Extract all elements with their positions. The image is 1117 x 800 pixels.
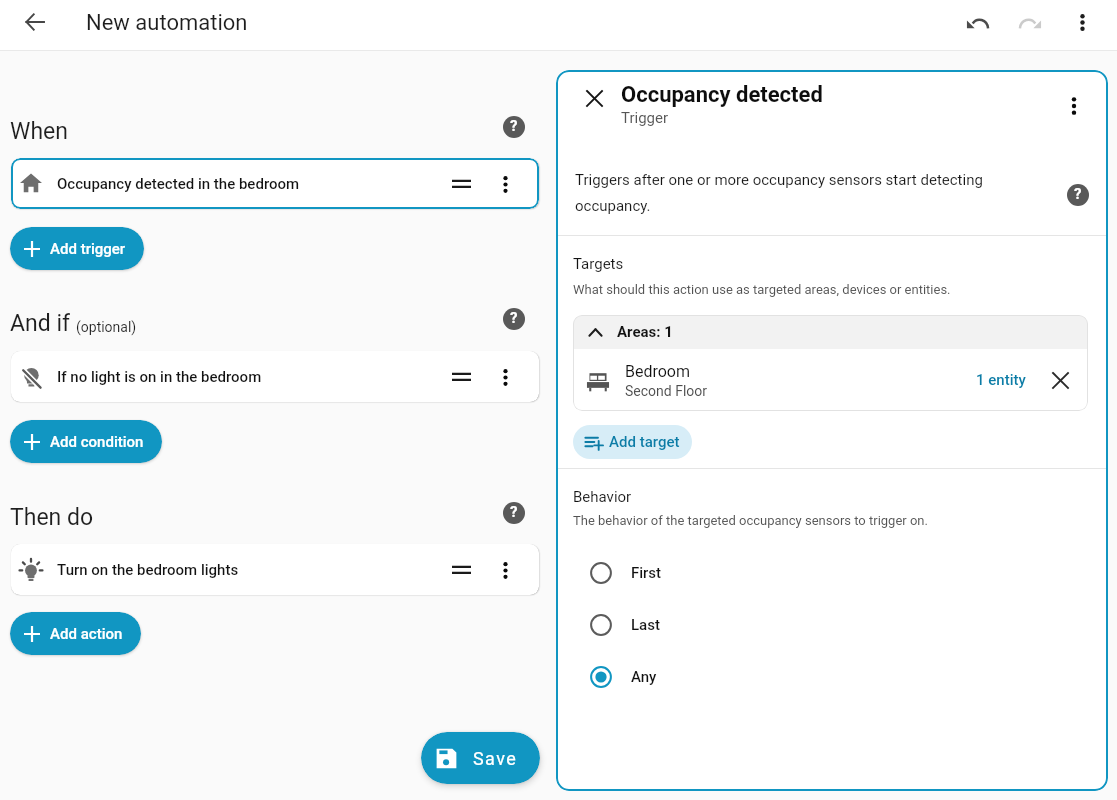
staticText: ? xyxy=(510,503,518,521)
staticText: When xyxy=(10,118,68,145)
button[interactable]: First xyxy=(573,547,1088,599)
button[interactable]: Last xyxy=(573,599,1088,651)
staticText: Trigger xyxy=(621,109,669,127)
button[interactable]: If no light is on in the bedroom xyxy=(11,351,539,402)
staticText: Areas: 1 xyxy=(617,323,673,341)
staticText: If no light is on in the bedroom xyxy=(57,368,262,386)
staticText: New automation xyxy=(86,10,248,36)
staticText: ? xyxy=(1074,185,1082,203)
button[interactable]: Add target xyxy=(573,425,692,459)
staticText: Occupancy detected in the bedroom xyxy=(57,175,300,193)
button[interactable]: Back xyxy=(13,4,57,48)
staticText: Any xyxy=(631,668,657,686)
button[interactable]: Help xyxy=(497,499,531,526)
staticText: (optional) xyxy=(76,319,137,335)
button[interactable]: Turn on the bedroom lights xyxy=(11,544,539,595)
button[interactable]: Save xyxy=(421,732,540,784)
staticText: Targets xyxy=(573,255,624,273)
staticText: First xyxy=(631,564,662,582)
button[interactable]: More options xyxy=(1056,85,1092,121)
button[interactable]: Close xyxy=(576,85,612,121)
staticText: The behavior of the targeted occupancy s… xyxy=(573,513,928,528)
button[interactable]: Add action xyxy=(10,612,141,655)
staticText: What should this action use as targeted … xyxy=(573,282,951,297)
button[interactable]: Undo xyxy=(956,4,1000,48)
button[interactable]: Reorder xyxy=(444,360,478,394)
staticText: Save xyxy=(473,748,518,769)
staticText: 1 entity xyxy=(976,371,1026,389)
staticText: Last xyxy=(631,616,660,634)
staticText: Turn on the bedroom lights xyxy=(57,561,239,579)
button[interactable]: Reorder xyxy=(444,553,478,587)
staticText: Behavior xyxy=(573,488,632,506)
button[interactable]: Occupancy detected in the bedroom xyxy=(11,158,539,209)
staticText: Bedroom xyxy=(625,362,691,381)
staticText: Add action xyxy=(50,625,123,643)
button[interactable]: Areas: 1 xyxy=(573,315,1088,349)
button[interactable]: Help xyxy=(1061,178,1095,212)
staticText: Second Floor xyxy=(625,383,708,399)
button[interactable]: More options xyxy=(1060,4,1104,48)
button[interactable]: Help xyxy=(497,305,531,332)
staticText: ? xyxy=(510,309,518,327)
button[interactable]: Options xyxy=(488,167,522,201)
button[interactable]: Reorder xyxy=(444,167,478,201)
button[interactable]: Any xyxy=(573,651,1088,703)
staticText: Add trigger xyxy=(50,240,126,258)
button[interactable]: Add condition xyxy=(10,420,162,463)
button[interactable]: Remove target xyxy=(1044,364,1076,396)
staticText: Add target xyxy=(609,433,680,451)
button[interactable]: Options xyxy=(488,360,522,394)
staticText: ? xyxy=(510,117,518,135)
button[interactable]: Bedroom xyxy=(573,349,1088,411)
staticText: Triggers after one or more occupancy sen… xyxy=(575,171,993,214)
staticText: Add condition xyxy=(50,433,144,451)
staticText: Then do xyxy=(10,504,94,531)
button[interactable]: Redo xyxy=(1008,4,1052,48)
button[interactable]: Help xyxy=(497,113,531,140)
staticText: And if xyxy=(10,310,70,337)
button[interactable]: Add trigger xyxy=(10,227,144,270)
button[interactable]: Options xyxy=(488,553,522,587)
staticText: Occupancy detected xyxy=(621,82,823,108)
